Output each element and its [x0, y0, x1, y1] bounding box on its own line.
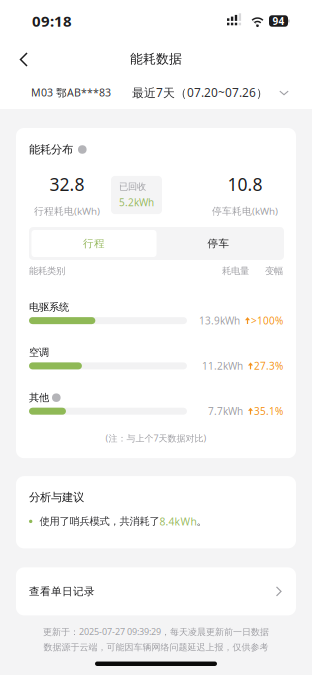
button[interactable]: 返回	[12, 44, 38, 74]
staticText: 其他	[29, 391, 49, 404]
button[interactable]: 最近7天（07.20~07.26）	[132, 84, 289, 101]
staticText: 能耗分布	[29, 142, 73, 157]
staticText: M03 鄂AB***83	[31, 85, 111, 100]
staticText: 27.3%	[254, 359, 283, 373]
staticText: 32.8	[49, 172, 84, 196]
staticText: >100%	[251, 314, 283, 327]
staticText: 停车	[207, 237, 229, 250]
staticText: 8.4kWh	[159, 514, 196, 528]
button[interactable]: 行程	[31, 230, 156, 257]
staticText: 分析与建议	[29, 490, 84, 504]
staticText: 更新于：2025-07-27 09:39:29，每天凌晨更新前一日数据	[43, 625, 269, 638]
staticText: 10.8	[227, 172, 262, 196]
staticText: 耗电量	[222, 265, 249, 277]
staticText: 查看单日记录	[29, 585, 95, 598]
staticText: 94	[272, 14, 284, 28]
staticText: 行程耗电(kWh)	[34, 204, 100, 217]
staticText: 35.1%	[254, 404, 283, 418]
staticText: 变幅	[265, 265, 283, 277]
staticText: 电驱系统	[29, 301, 69, 313]
staticText: ?	[81, 145, 84, 154]
staticText: 13.9kWh	[199, 314, 240, 327]
staticText: ?	[55, 393, 58, 402]
staticText: 停车耗电(kWh)	[212, 204, 278, 217]
staticText: 能耗数据	[130, 51, 182, 67]
staticText: 最近7天（07.20~07.26）	[132, 84, 268, 101]
staticText: 5.2kWh	[119, 195, 154, 209]
staticText: 。	[196, 515, 206, 528]
staticText: 空调	[29, 346, 49, 359]
staticText: 已回收	[119, 181, 146, 192]
staticText: 行程	[83, 237, 105, 250]
staticText: 11.2kWh	[202, 359, 243, 373]
button[interactable]: 查看单日记录	[16, 567, 296, 615]
staticText: 数据源于云端，可能因车辆网络问题延迟上报，仅供参考	[43, 642, 268, 653]
button[interactable]: 停车	[156, 230, 280, 257]
staticText: (注：与上个7天数据对比)	[105, 432, 206, 444]
staticText: 能耗类别	[29, 265, 65, 277]
staticText: 使用了哨兵模式，共消耗了	[39, 515, 159, 528]
staticText: 09:18	[32, 11, 72, 31]
button[interactable]: M03 鄂AB***83	[31, 85, 111, 100]
staticText: 7.7kWh	[208, 404, 243, 418]
